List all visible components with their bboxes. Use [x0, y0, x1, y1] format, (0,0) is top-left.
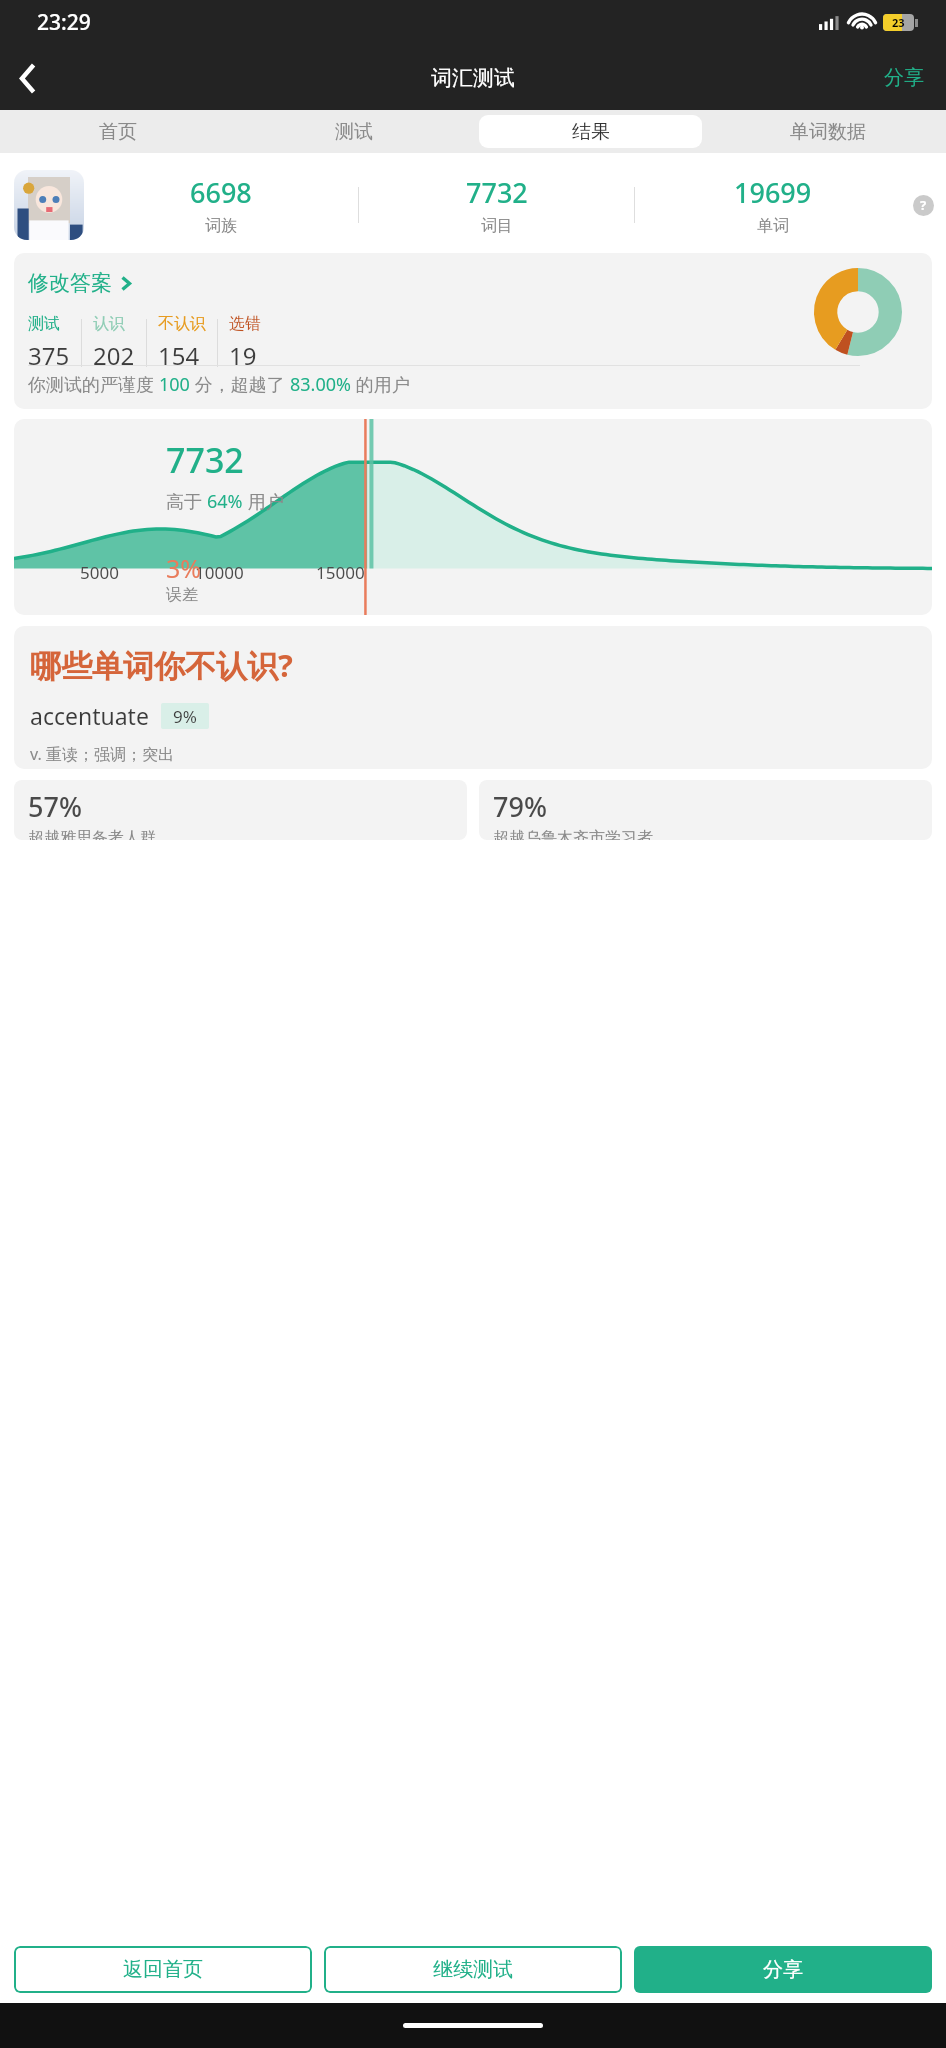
- staticText: 23:29: [37, 8, 91, 37]
- button[interactable]: 修改答案: [28, 270, 131, 296]
- staticText: accentuate: [30, 700, 149, 731]
- button[interactable]: 首页: [7, 115, 229, 148]
- staticText: 高于: [166, 489, 207, 514]
- staticText: 79%: [493, 788, 547, 825]
- staticText: 结果: [572, 120, 610, 144]
- staticText: 64%: [207, 489, 243, 514]
- staticText: 5000: [80, 561, 119, 584]
- button[interactable]: 57%: [14, 780, 467, 840]
- button[interactable]: 测试: [243, 115, 465, 148]
- staticText: 测试: [335, 120, 373, 144]
- staticText: 23: [892, 15, 905, 30]
- staticText: 100: [159, 372, 190, 397]
- staticText: 19699: [734, 174, 812, 211]
- button[interactable]: 结果: [479, 115, 702, 148]
- staticText: 继续测试: [433, 1957, 513, 1982]
- staticText: v. 重读；强调；突出: [30, 743, 174, 765]
- staticText: 不认识: [158, 314, 206, 334]
- staticText: 3%: [166, 551, 202, 585]
- staticText: 单词数据: [790, 120, 866, 144]
- staticText: 83.00%: [290, 372, 351, 397]
- staticText: 分享: [763, 1957, 803, 1982]
- staticText: 修改答案: [28, 270, 112, 296]
- button[interactable]: 79%: [479, 780, 932, 840]
- staticText: 375: [28, 339, 70, 372]
- button[interactable]: 单词数据: [716, 115, 939, 148]
- staticText: 测试: [28, 314, 60, 334]
- staticText: 的用户: [351, 372, 410, 397]
- staticText: 超越乌鲁木齐市学习者: [493, 828, 653, 840]
- staticText: 用户: [243, 489, 284, 514]
- staticText: 词汇测试: [431, 65, 515, 91]
- staticText: 分，超越了: [190, 372, 290, 397]
- button[interactable]: 继续测试: [324, 1946, 622, 1993]
- staticText: 超越雅思备考人群: [28, 828, 156, 840]
- staticText: 词目: [481, 216, 513, 236]
- staticText: 10000: [195, 561, 244, 584]
- button[interactable]: Back: [0, 50, 56, 106]
- staticText: 误差: [166, 585, 198, 605]
- button[interactable]: 分享: [634, 1946, 932, 1993]
- staticText: 15000: [316, 561, 365, 584]
- staticText: 6698: [190, 174, 252, 211]
- staticText: ?: [920, 196, 927, 214]
- staticText: 154: [158, 339, 200, 372]
- button[interactable]: 返回首页: [14, 1946, 312, 1993]
- staticText: 选错: [229, 314, 261, 334]
- staticText: 词族: [205, 216, 237, 236]
- staticText: 202: [93, 339, 135, 372]
- button[interactable]: Help: [910, 192, 936, 218]
- staticText: 9%: [173, 705, 197, 728]
- staticText: 返回首页: [123, 1957, 203, 1982]
- staticText: 7732: [466, 174, 528, 211]
- staticText: 首页: [99, 120, 137, 144]
- staticText: 认识: [93, 314, 125, 334]
- staticText: 分享: [884, 65, 924, 90]
- button[interactable]: 分享: [862, 57, 946, 98]
- staticText: 7732: [166, 437, 244, 483]
- staticText: 19: [229, 339, 257, 372]
- staticText: 单词: [757, 216, 789, 236]
- staticText: 你测试的严谨度: [28, 372, 159, 397]
- staticText: 57%: [28, 788, 82, 825]
- staticText: 哪些单词你不认识?: [30, 644, 293, 686]
